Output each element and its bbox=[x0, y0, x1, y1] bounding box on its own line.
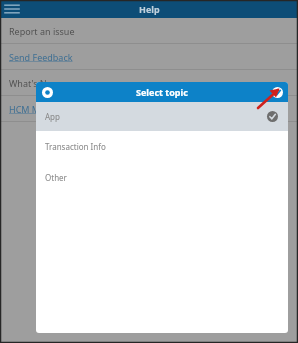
button[interactable]: Send Feedback bbox=[0, 44, 298, 70]
button[interactable]: App bbox=[36, 102, 288, 131]
staticText: App bbox=[45, 111, 60, 122]
staticText: Report an issue bbox=[9, 25, 75, 37]
button[interactable]: Report an issue bbox=[0, 18, 298, 44]
staticText: Transaction Info bbox=[45, 141, 106, 152]
button[interactable]: What's New bbox=[0, 70, 298, 96]
staticText: What's New bbox=[9, 77, 59, 89]
staticText: Other bbox=[45, 172, 67, 183]
button[interactable]: Transaction Info bbox=[36, 131, 288, 162]
staticText: HCM Mobile Support bbox=[9, 103, 98, 115]
button[interactable]: Menu bbox=[4, 2, 20, 16]
staticText: Help bbox=[139, 3, 160, 15]
button[interactable]: Confirm selection bbox=[270, 85, 284, 99]
button[interactable]: HCM Mobile Support bbox=[0, 96, 298, 122]
button[interactable]: Close bbox=[40, 85, 54, 99]
button[interactable]: Other bbox=[36, 162, 288, 193]
staticText: Select topic bbox=[136, 86, 188, 98]
staticText: Send Feedback bbox=[9, 51, 73, 63]
